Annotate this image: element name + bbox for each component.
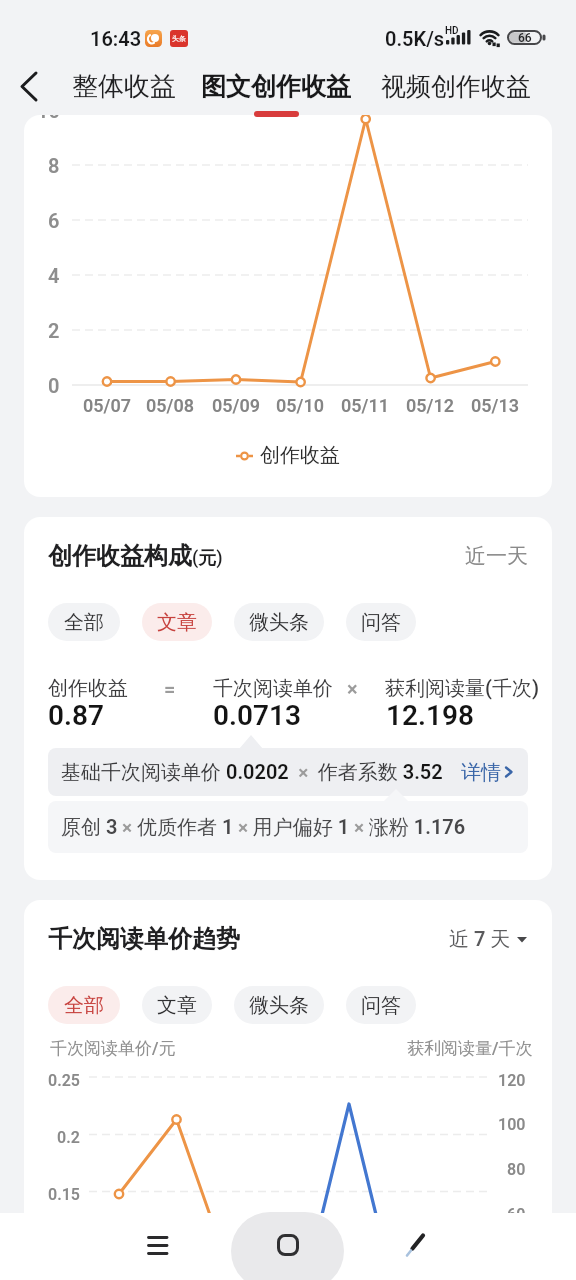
staticText: 0.0713: [213, 699, 301, 732]
button[interactable]: 全部: [48, 986, 120, 1024]
staticText: 100: [498, 1115, 526, 1134]
staticText: 0.87: [48, 699, 104, 732]
staticText: 近一天: [465, 543, 528, 569]
staticText: 整体收益: [72, 70, 176, 102]
button[interactable]: [398, 1227, 435, 1264]
button[interactable]: [139, 1227, 176, 1264]
staticText: 60: [507, 1205, 526, 1224]
button[interactable]: 基础千次阅读单价 0.0202 × 作者系数 3.52: [48, 748, 528, 796]
staticText: 05/09: [212, 395, 260, 416]
staticText: 8: [48, 154, 60, 177]
staticText: 80: [507, 1160, 526, 1179]
staticText: 视频创作收益: [381, 71, 531, 102]
staticText: 微头条: [249, 993, 309, 1018]
staticText: 0.15: [48, 1185, 80, 1204]
button[interactable]: 文章: [142, 603, 212, 641]
staticText: 问答: [361, 610, 401, 635]
staticText: 05/10: [276, 395, 324, 416]
staticText: 0: [48, 374, 60, 397]
staticText: 文章: [157, 993, 197, 1018]
staticText: 创作收益: [48, 676, 128, 701]
button[interactable]: [231, 1212, 344, 1280]
staticText: 66: [518, 31, 532, 45]
staticText: 2: [48, 319, 60, 342]
staticText: 05/12: [406, 395, 454, 416]
staticText: 原创 3 × 优质作者 1 × 用户偏好 1 × 涨粉 1.176: [61, 815, 466, 840]
staticText: 图文创作收益: [201, 71, 351, 102]
staticText: 文章: [157, 610, 197, 635]
staticText: 近 7 天: [449, 927, 511, 952]
staticText: 05/13: [471, 395, 519, 416]
staticText: 获利阅读量(千次): [385, 676, 539, 701]
staticText: 0.25: [48, 1071, 80, 1090]
staticText: 基础千次阅读单价 0.0202 × 作者系数 3.52: [61, 760, 443, 785]
staticText: 问答: [361, 993, 401, 1018]
staticText: 120: [498, 1071, 526, 1090]
staticText: 千次阅读单价: [213, 676, 333, 701]
staticText: 详情: [461, 760, 501, 785]
staticText: 16:43: [90, 27, 142, 50]
staticText: 0.5K/s: [385, 27, 445, 50]
staticText: 全部: [64, 610, 104, 635]
staticText: 05/08: [146, 395, 194, 416]
staticText: 12.198: [386, 699, 474, 732]
staticText: =: [164, 677, 176, 700]
button[interactable]: 微头条: [234, 603, 324, 641]
staticText: 千次阅读单价趋势: [48, 924, 240, 954]
button[interactable]: 视频创作收益: [0, 0, 160, 32]
staticText: 05/07: [83, 395, 131, 416]
button[interactable]: 文章: [142, 986, 212, 1024]
staticText: 6: [48, 209, 60, 232]
staticText: 微头条: [249, 610, 309, 635]
staticText: 全部: [64, 993, 104, 1018]
staticText: 0.2: [57, 1128, 80, 1147]
staticText: 千次阅读单价/元: [50, 1038, 176, 1059]
staticText: HD: [445, 25, 459, 37]
button[interactable]: 全部: [48, 603, 120, 641]
staticText: 创作收益: [260, 443, 340, 468]
staticText: 头条: [172, 34, 186, 43]
staticText: ×: [347, 677, 358, 700]
button[interactable]: 微头条: [234, 986, 324, 1024]
button[interactable]: 图文创作收益: [0, 0, 164, 32]
button[interactable]: 近 7 天: [388, 924, 528, 954]
button[interactable]: 问答: [346, 603, 416, 641]
button[interactable]: 整体收益: [0, 0, 120, 32]
staticText: 10: [37, 115, 60, 122]
button[interactable]: [14, 70, 44, 104]
button[interactable]: 近一天: [24, 517, 164, 547]
staticText: 创作收益构成(元): [48, 541, 223, 571]
staticText: 获利阅读量/千次: [407, 1038, 533, 1059]
staticText: 05/11: [341, 395, 389, 416]
button[interactable]: 问答: [346, 986, 416, 1024]
staticText: 4: [48, 264, 60, 287]
